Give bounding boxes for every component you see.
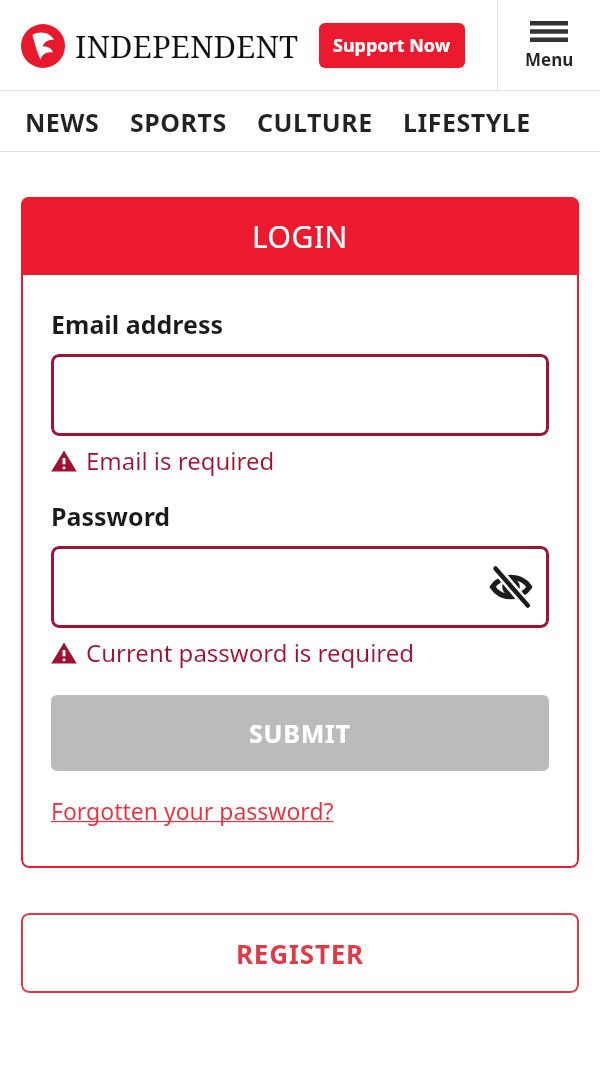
staticText: SUBMIT	[249, 716, 351, 750]
staticText: Forgotten your password?	[51, 795, 334, 826]
button[interactable]: SUBMIT	[51, 695, 549, 771]
staticText: SPORTS	[130, 105, 227, 139]
staticText: Current password is required	[86, 636, 415, 669]
staticText: INDEPENDENT	[75, 25, 299, 67]
button[interactable]: Support Now	[319, 23, 465, 68]
staticText: LIFESTYLE	[403, 105, 531, 139]
staticText: Menu	[525, 48, 574, 71]
button[interactable]: NEWS	[21, 91, 104, 152]
staticText: Support Now	[333, 33, 451, 58]
button[interactable]	[51, 354, 549, 436]
button[interactable]: Forgotten your password?	[51, 791, 334, 830]
button[interactable]: CULTURE	[253, 91, 377, 152]
button[interactable]: Show password	[487, 563, 535, 611]
staticText: Email is required	[86, 444, 275, 477]
staticText: NEWS	[25, 105, 100, 139]
button[interactable]: Show password	[51, 546, 549, 628]
staticText: Password	[51, 499, 171, 533]
staticText: Email address	[51, 307, 224, 341]
button[interactable]: Menu	[498, 0, 600, 91]
staticText: REGISTER	[236, 936, 364, 971]
staticText: LOGIN	[252, 216, 348, 257]
button[interactable]: SPORTS	[126, 91, 231, 152]
button[interactable]: LIFESTYLE	[399, 91, 535, 152]
button[interactable]: REGISTER	[21, 913, 579, 993]
staticText: CULTURE	[257, 105, 373, 139]
